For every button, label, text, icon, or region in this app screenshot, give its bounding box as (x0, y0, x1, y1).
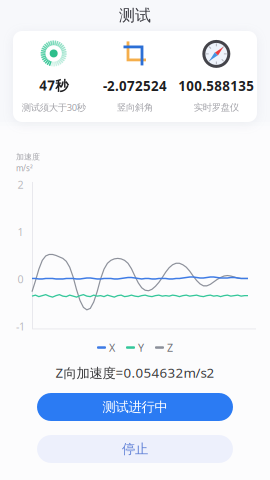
staticText: 停止 (122, 441, 148, 457)
button[interactable]: 测试进行中 (37, 393, 233, 421)
staticText: Y (138, 340, 144, 355)
staticText: 47秒 (39, 76, 68, 94)
staticText: 加速度 (16, 152, 40, 162)
staticText: 竖向斜角 (117, 102, 153, 113)
staticText: Z (167, 340, 173, 355)
button[interactable]: 停止 (37, 435, 233, 463)
staticText: 2 (17, 177, 23, 192)
staticText: 100.588135 (178, 77, 254, 95)
staticText: 测试进行中 (102, 399, 167, 415)
staticText: 实时罗盘仪 (194, 102, 239, 113)
staticText: -2.072524 (103, 77, 167, 95)
staticText: 测试 (119, 6, 151, 25)
staticText: X (109, 340, 115, 355)
staticText: m/s² (16, 163, 33, 173)
staticText: 1 (17, 225, 23, 239)
staticText: 0 (17, 272, 23, 286)
staticText: 测试须大于30秒 (22, 101, 86, 114)
staticText: Z向加速度=0.054632m/s2 (55, 364, 214, 381)
staticText: -1 (16, 319, 25, 333)
